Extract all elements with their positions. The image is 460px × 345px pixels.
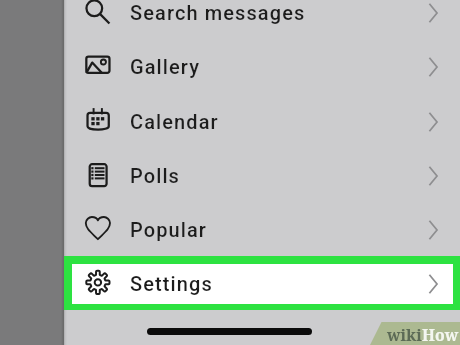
other: Open Polls — [428, 166, 438, 186]
other: Open Search messages — [428, 3, 438, 23]
button[interactable]: Settings — [64, 256, 460, 310]
staticText: How — [422, 324, 459, 345]
other: Open Settings — [428, 274, 438, 294]
other: Open Gallery — [428, 57, 438, 77]
button[interactable]: Search messages — [64, 0, 460, 39]
staticText: Polls — [130, 164, 180, 187]
staticText: Popular — [130, 218, 207, 241]
staticText: Calendar — [130, 110, 219, 133]
button[interactable]: Popular — [64, 202, 460, 256]
other: Open Calendar — [428, 112, 438, 132]
button[interactable]: Gallery — [64, 39, 460, 93]
staticText: Gallery — [130, 55, 201, 78]
other: Open Popular — [428, 220, 438, 240]
button[interactable]: Polls — [64, 148, 460, 202]
staticText: wiki — [387, 324, 422, 345]
staticText: Settings — [130, 272, 213, 295]
staticText: Search messages — [130, 1, 306, 24]
button[interactable]: Calendar — [64, 94, 460, 148]
